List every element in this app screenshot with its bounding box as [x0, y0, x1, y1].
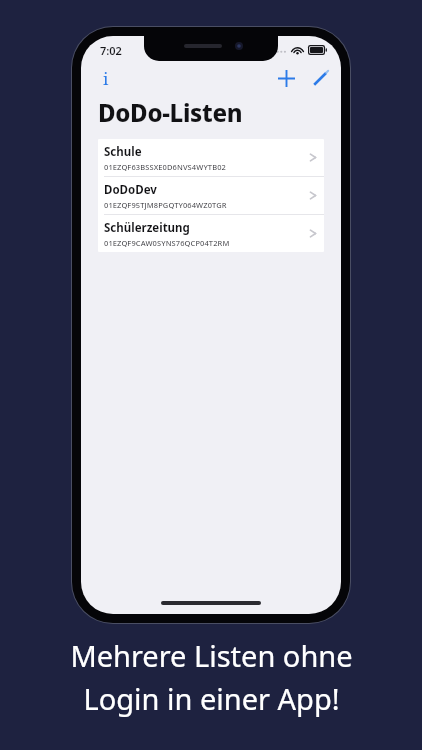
staticText: Mehrere Listen ohne	[70, 636, 353, 675]
button[interactable]: DoDoDev	[98, 177, 324, 214]
staticText: 01EZQF63BSSXE0D6NVS4WYTB02	[104, 162, 226, 172]
staticText: 01EZQF95TJM8PGQTY064WZ0TGR	[104, 200, 227, 210]
staticText: Schule	[104, 144, 142, 160]
button[interactable]: Add list	[271, 63, 301, 93]
staticText: DoDo-Listen	[98, 96, 243, 129]
button[interactable]: Info	[91, 63, 121, 93]
staticText: Login in einer App!	[83, 679, 340, 718]
staticText: i	[103, 67, 109, 90]
staticText: DoDoDev	[104, 182, 157, 198]
staticText: 7:02	[100, 43, 122, 58]
button[interactable]: Schülerzeitung	[98, 215, 324, 252]
button[interactable]: Schule	[98, 139, 324, 176]
button[interactable]: Edit	[305, 63, 335, 93]
staticText: Schülerzeitung	[104, 220, 190, 236]
staticText: 01EZQF9CAW0SYNS76QCP04T2RM	[104, 238, 230, 248]
